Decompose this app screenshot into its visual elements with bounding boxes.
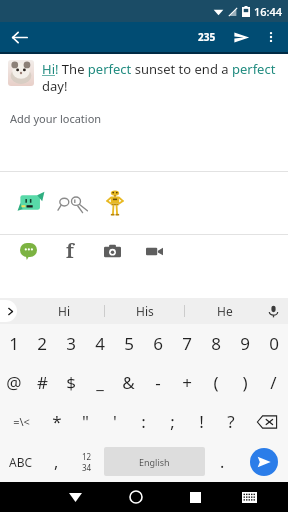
staticText: @ [6, 371, 22, 394]
button[interactable]: & [114, 363, 143, 402]
button[interactable]: Home [114, 482, 157, 512]
staticText: 235 [198, 30, 216, 44]
staticText: , [54, 451, 59, 473]
staticText: - [155, 371, 161, 394]
button[interactable]: He [185, 298, 264, 324]
button[interactable]: 9 [230, 324, 259, 363]
staticText: & [122, 371, 135, 394]
button[interactable]: English [104, 447, 205, 476]
button[interactable]: Backspace [245, 402, 288, 441]
button[interactable]: Sticker [14, 186, 48, 220]
staticText: ABC [9, 454, 33, 470]
staticText: 5 [124, 332, 134, 355]
button[interactable]: - [143, 363, 172, 402]
button[interactable]: / [259, 363, 288, 402]
button[interactable]: ' [100, 402, 129, 441]
staticText: " [82, 410, 89, 433]
staticText: His [136, 303, 154, 319]
staticText: * [52, 410, 62, 433]
button[interactable]: Video [140, 237, 168, 265]
button[interactable]: Profile photo [8, 60, 34, 86]
button[interactable]: $ [56, 363, 85, 402]
button[interactable]: Add your location [10, 111, 288, 126]
button[interactable]: Hangouts [14, 237, 42, 265]
button[interactable]: Send [228, 24, 254, 50]
staticText: _ [96, 371, 104, 394]
button[interactable]: ? [216, 402, 245, 441]
button[interactable]: 3 [56, 324, 85, 363]
staticText: =\< [13, 414, 30, 429]
button[interactable]: Robot emoji [98, 186, 132, 220]
button[interactable]: 7 [172, 324, 201, 363]
staticText: f [66, 238, 74, 264]
button[interactable]: Hi [24, 298, 104, 324]
button[interactable]: : [129, 402, 158, 441]
button[interactable]: . [205, 441, 239, 482]
button[interactable]: ( [201, 363, 230, 402]
button[interactable]: Switch keyboard [228, 482, 271, 512]
staticText: 2 [37, 332, 47, 355]
button[interactable]: His [105, 298, 184, 324]
staticText: 9 [240, 332, 250, 355]
staticText: 34 [82, 462, 92, 473]
button[interactable]: 0 [259, 324, 288, 363]
button[interactable]: Recent apps [174, 482, 217, 512]
button[interactable]: 1 [0, 324, 28, 363]
button[interactable]: Camera [98, 237, 126, 265]
button[interactable]: ! [187, 402, 216, 441]
button[interactable]: More options [258, 24, 284, 50]
button[interactable]: @ [0, 363, 28, 402]
button[interactable]: 2 [28, 324, 56, 363]
staticText: Add your location [10, 111, 102, 126]
staticText: 3 [66, 332, 76, 355]
staticText: # [37, 371, 48, 394]
button[interactable]: " [71, 402, 100, 441]
staticText: Hi [58, 303, 70, 319]
staticText: 4 [95, 332, 105, 355]
staticText: 6 [153, 332, 163, 355]
button[interactable]: 5 [114, 324, 143, 363]
button[interactable]: Send message [250, 448, 278, 476]
staticText: Hi! The perfect sunset to end a perfect … [42, 60, 278, 95]
button[interactable]: ) [230, 363, 259, 402]
button[interactable]: Voice input [262, 300, 284, 322]
staticText: ) [242, 371, 248, 394]
button[interactable]: _ [85, 363, 114, 402]
button[interactable]: , [42, 441, 70, 482]
button[interactable]: Expand suggestions [0, 300, 17, 322]
staticText: $ [66, 371, 76, 394]
staticText: + [182, 371, 192, 394]
staticText: / [270, 371, 277, 394]
staticText: ! [199, 410, 204, 433]
button[interactable]: 8 [201, 324, 230, 363]
staticText: 12 [82, 451, 92, 462]
button[interactable]: ABC [0, 441, 42, 482]
staticText: ? [227, 410, 235, 433]
button[interactable]: 6 [143, 324, 172, 363]
button[interactable]: # [28, 363, 56, 402]
staticText: ( [213, 371, 219, 394]
staticText: 16:44 [254, 4, 283, 19]
staticText: . [220, 451, 225, 473]
button[interactable]: Facebook [56, 237, 84, 265]
staticText: He [217, 303, 233, 319]
staticText: 0 [269, 332, 279, 355]
button[interactable]: Back [6, 24, 32, 50]
staticText: ' [113, 410, 117, 433]
staticText: 1 [9, 332, 19, 355]
staticText: 7 [182, 332, 192, 355]
staticText: 8 [211, 332, 221, 355]
button[interactable]: ; [158, 402, 187, 441]
staticText: English [139, 456, 170, 468]
button[interactable]: * [42, 402, 71, 441]
button[interactable]: Fist bump emoji [56, 186, 90, 220]
button[interactable]: Back [54, 482, 97, 512]
button[interactable]: =\< [0, 402, 42, 441]
staticText: ; [170, 410, 175, 433]
staticText: : [141, 410, 146, 433]
button[interactable]: 4 [85, 324, 114, 363]
button[interactable]: Numbers [70, 441, 104, 482]
button[interactable]: + [172, 363, 201, 402]
